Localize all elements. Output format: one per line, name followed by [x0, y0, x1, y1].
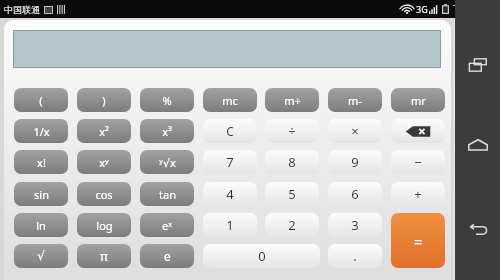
button[interactable]: ln [14, 213, 68, 237]
staticText: sin [34, 187, 49, 202]
staticText: tan [159, 187, 176, 202]
staticText: + [414, 185, 422, 203]
staticText: m- [348, 93, 362, 108]
button[interactable]: eˣ [140, 213, 194, 237]
button[interactable]: x² [77, 119, 131, 143]
staticText: − [414, 153, 422, 171]
button[interactable]: 4 [203, 182, 257, 206]
button[interactable]: 8 [265, 150, 319, 174]
staticText: x³ [162, 124, 172, 139]
button[interactable]: 1 [203, 213, 257, 237]
button[interactable]: 6 [328, 182, 382, 206]
button[interactable]: m- [328, 88, 382, 112]
button[interactable]: mr [391, 88, 445, 112]
staticText: xʸ [99, 155, 109, 170]
staticText: 0 [258, 247, 266, 265]
staticText: mc [222, 93, 238, 108]
staticText: √ [37, 249, 45, 263]
staticText: log [96, 218, 113, 233]
staticText: 4 [226, 185, 234, 203]
button[interactable]: ( [14, 88, 68, 112]
button[interactable]: 7 [203, 150, 257, 174]
staticText: . [353, 247, 357, 265]
staticText: 1/x [33, 124, 50, 139]
staticText: = [414, 231, 423, 251]
staticText: mr [411, 93, 426, 108]
staticText: 2 [288, 216, 296, 234]
staticText: 9 [351, 153, 359, 171]
button[interactable]: C [203, 119, 257, 143]
staticText: π [100, 248, 108, 264]
staticText: 3G [416, 3, 428, 15]
staticText: ln [36, 218, 46, 233]
button[interactable]: % [140, 88, 194, 112]
button[interactable]: . [328, 244, 382, 268]
button[interactable]: √ [14, 244, 68, 268]
staticText: 下午 5:02 [453, 2, 496, 16]
button[interactable]: Recent apps [455, 35, 500, 95]
button[interactable]: tan [140, 182, 194, 206]
staticText: C [226, 123, 234, 139]
button[interactable]: 3 [328, 213, 382, 237]
staticText: x! [37, 155, 46, 170]
staticText: e [164, 248, 171, 264]
button[interactable]: sin [14, 182, 68, 206]
staticText: x² [99, 124, 109, 139]
button[interactable]: 5 [265, 182, 319, 206]
button[interactable]: ÷ [265, 119, 319, 143]
button[interactable]: 9 [328, 150, 382, 174]
staticText: ÷ [288, 122, 296, 140]
button[interactable]: + [391, 182, 445, 206]
staticText: cos [95, 187, 113, 202]
staticText: 3 [351, 216, 359, 234]
staticText: ʸ√x [159, 155, 176, 170]
staticText: eˣ [162, 218, 172, 233]
staticText: ) [102, 93, 106, 108]
button[interactable]: π [77, 244, 131, 268]
staticText: 5 [288, 185, 296, 203]
button[interactable]: ) [77, 88, 131, 112]
staticText: 1 [226, 216, 234, 234]
button[interactable]: 1/x [14, 119, 68, 143]
staticText: 8 [288, 153, 296, 171]
staticText: % [162, 93, 172, 108]
button[interactable]: cos [77, 182, 131, 206]
button[interactable]: Back [455, 200, 500, 260]
button[interactable]: Home [455, 115, 500, 175]
staticText: 中国联通 [4, 4, 40, 15]
button[interactable]: × [328, 119, 382, 143]
button[interactable]: Backspace [391, 119, 445, 143]
button[interactable]: e [140, 244, 194, 268]
staticText: m+ [284, 93, 301, 108]
button[interactable]: ʸ√x [140, 150, 194, 174]
button[interactable]: log [77, 213, 131, 237]
staticText: × [351, 122, 359, 140]
button[interactable]: mc [203, 88, 257, 112]
button[interactable]: m+ [265, 88, 319, 112]
button[interactable]: xʸ [77, 150, 131, 174]
button[interactable]: 2 [265, 213, 319, 237]
button[interactable]: − [391, 150, 445, 174]
button[interactable]: x! [14, 150, 68, 174]
staticText: ( [39, 93, 43, 108]
button[interactable]: 0 [203, 244, 320, 268]
button[interactable]: Equals [391, 213, 445, 268]
staticText: 7 [226, 153, 234, 171]
staticText: 6 [351, 185, 359, 203]
button[interactable]: x³ [140, 119, 194, 143]
